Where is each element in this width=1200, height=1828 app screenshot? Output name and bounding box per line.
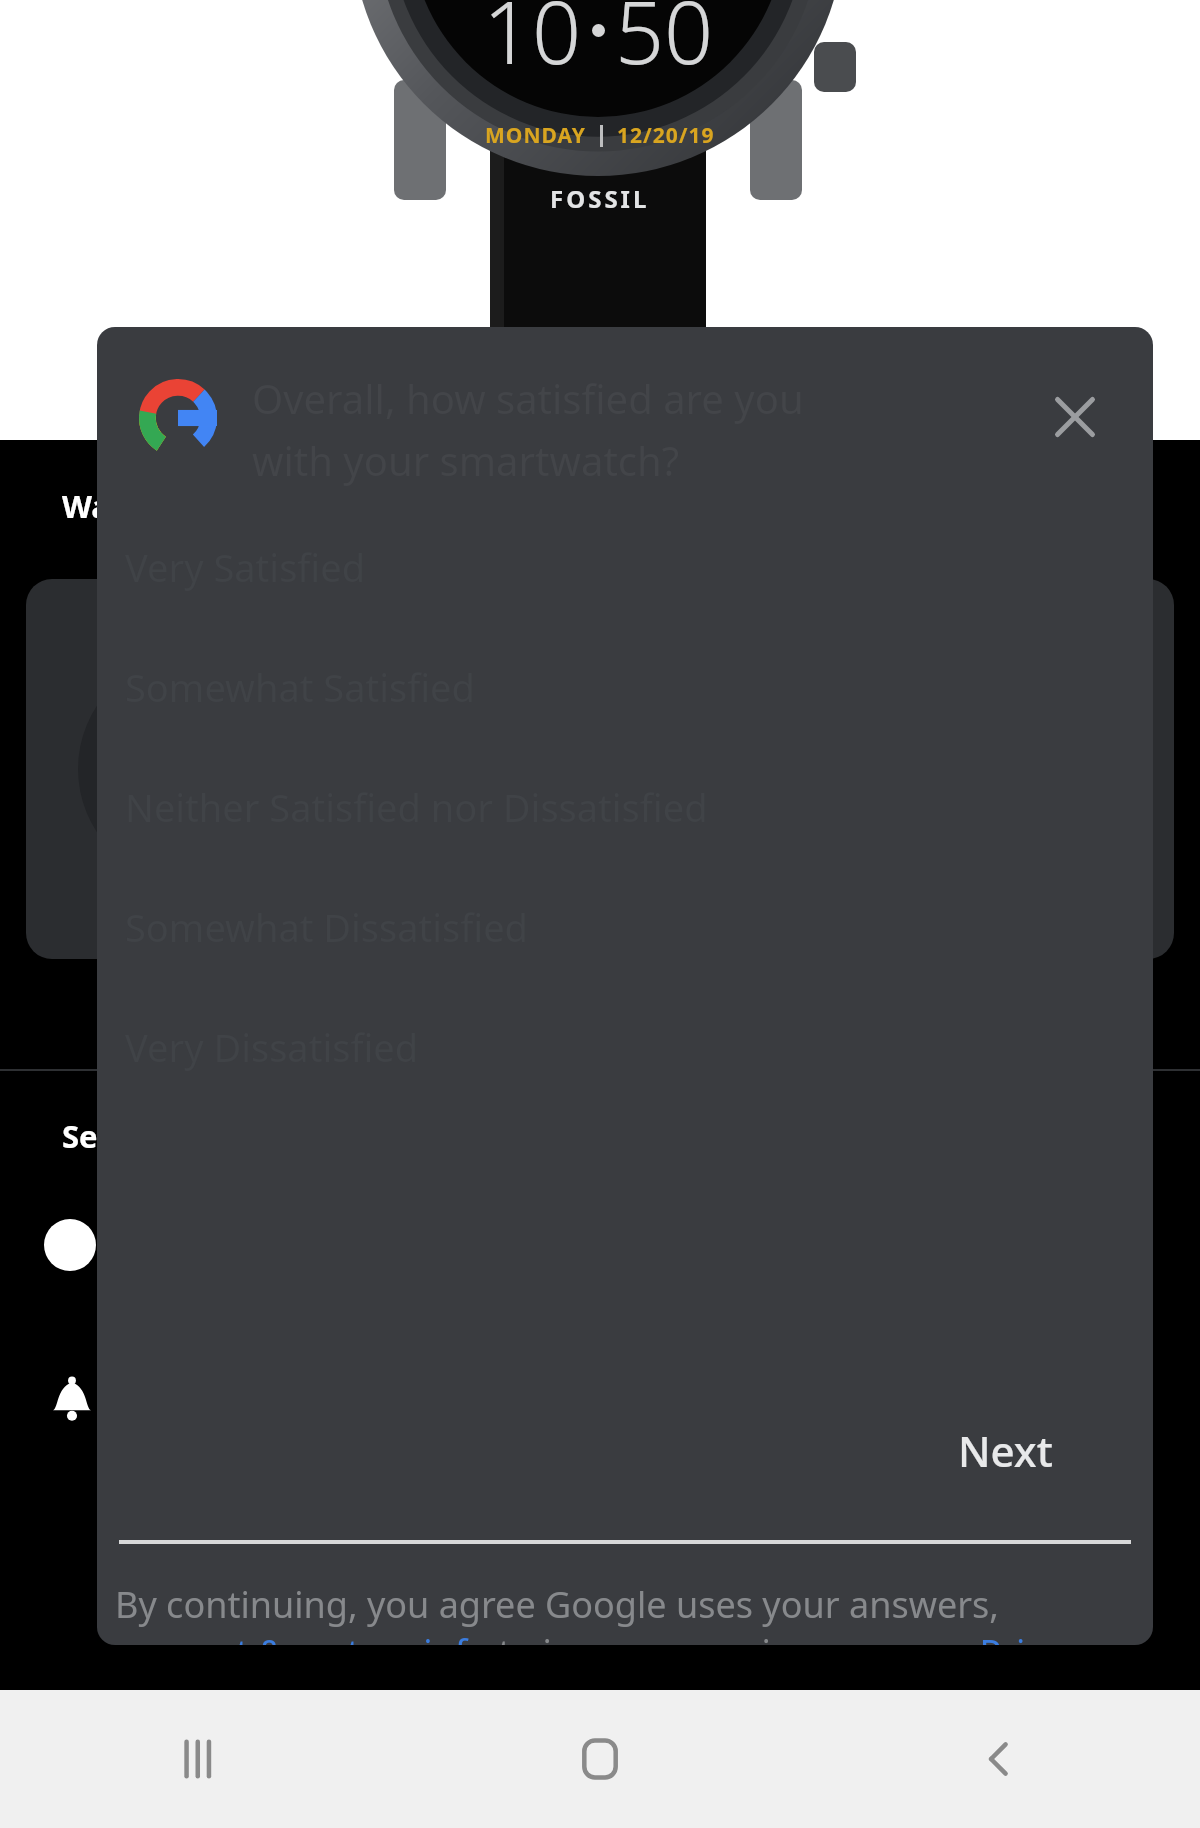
staticText: 12/20/19 — [617, 121, 715, 150]
staticText: MONDAY — [485, 121, 586, 150]
button[interactable] — [0, 1371, 1200, 1427]
staticText: Watch faces — [62, 485, 249, 527]
staticText: FOSSIL — [550, 182, 650, 215]
staticText: 50 — [615, 0, 714, 89]
button[interactable] — [0, 1219, 1200, 1271]
staticText: Settings — [62, 1115, 190, 1157]
button[interactable]: Next — [897, 1402, 1097, 1498]
button[interactable]: Home — [400, 1690, 800, 1828]
staticText: 10 — [483, 0, 582, 89]
button[interactable]: By continuing, you agree Google uses you… — [115, 1580, 1135, 1645]
button[interactable]: Close survey — [1027, 369, 1123, 465]
staticText: Next — [958, 1422, 1053, 1479]
button[interactable]: Recent apps — [0, 1690, 400, 1828]
button[interactable]: Back — [800, 1690, 1200, 1828]
button[interactable] — [26, 579, 1174, 959]
